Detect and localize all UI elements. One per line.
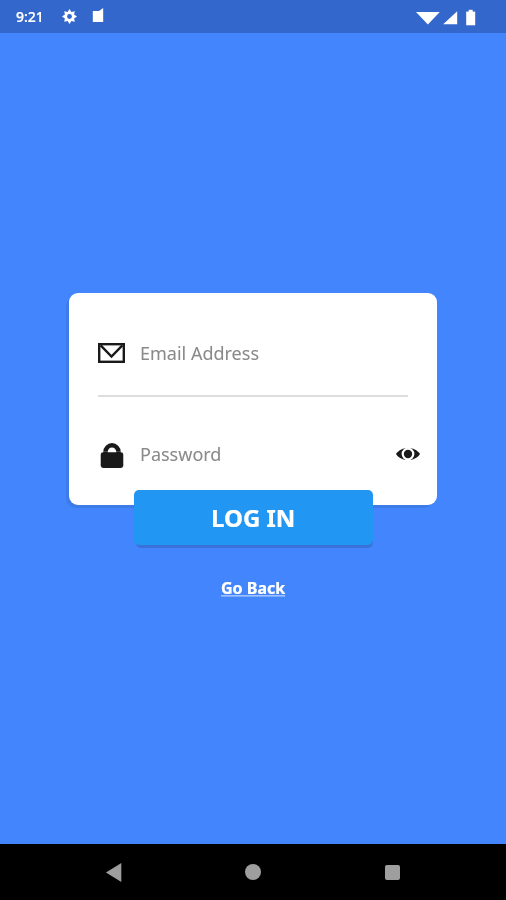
button[interactable]: Back — [90, 848, 138, 896]
button[interactable]: Email Address — [69, 331, 437, 375]
button[interactable]: Password — [69, 431, 437, 477]
button[interactable]: Show password — [388, 434, 428, 474]
button[interactable]: Recent apps — [368, 848, 416, 896]
button[interactable]: LOG IN — [134, 490, 373, 545]
staticText: Go Back — [221, 577, 286, 599]
button[interactable]: Home — [229, 848, 277, 896]
button[interactable]: Go Back — [205, 573, 301, 603]
staticText: Email Address — [140, 341, 260, 366]
staticText: 9:21 — [16, 7, 44, 26]
staticText: Password — [140, 442, 222, 467]
staticText: LOG IN — [211, 501, 296, 534]
